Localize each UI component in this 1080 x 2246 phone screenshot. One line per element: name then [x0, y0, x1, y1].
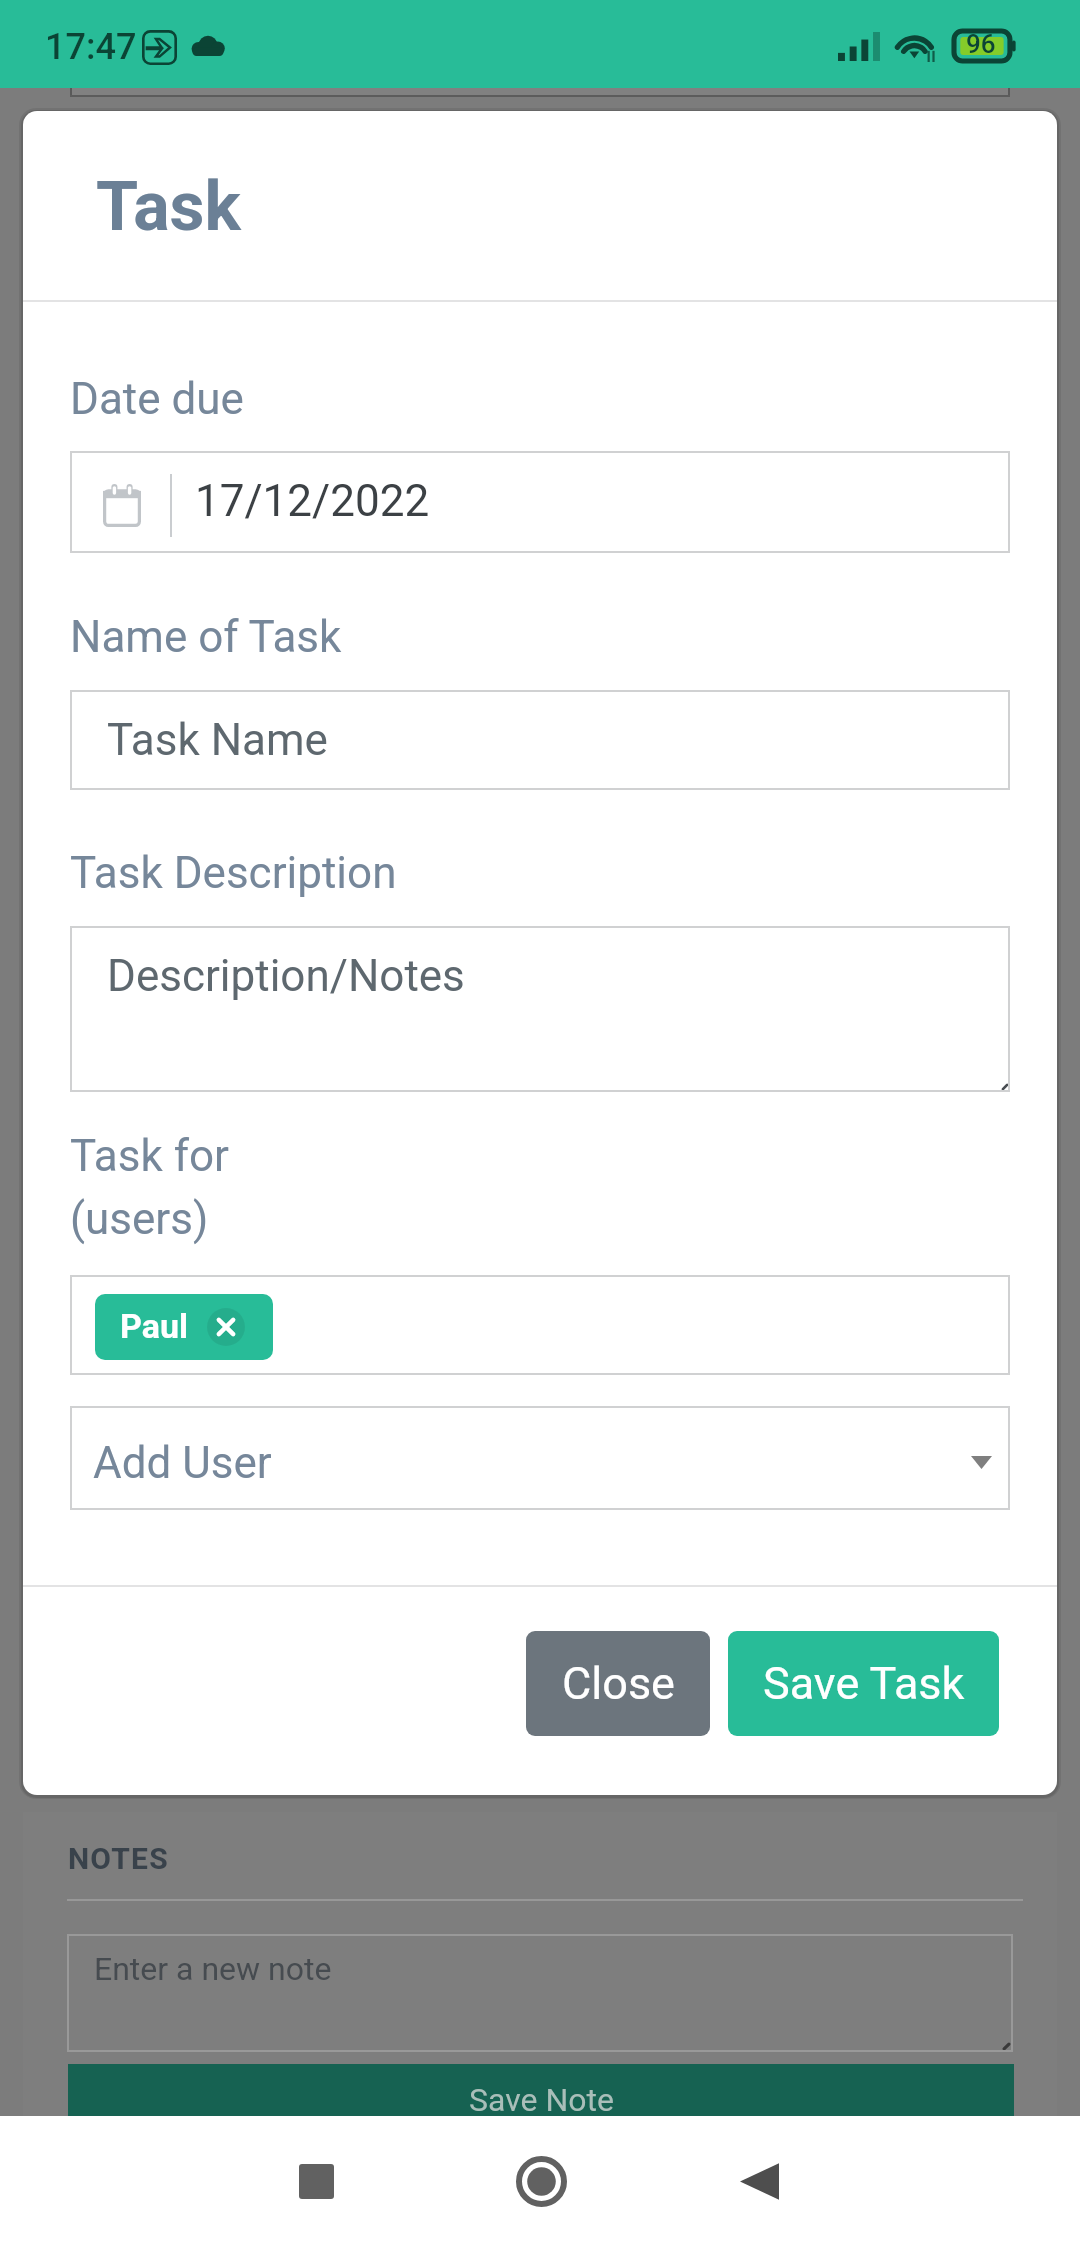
staticText: Save Task	[763, 1657, 965, 1710]
staticText: Save Note	[469, 2081, 614, 2119]
staticText: 17/12/2022	[195, 475, 430, 527]
button[interactable]: Back	[689, 2116, 829, 2246]
staticText: 17:47	[45, 26, 137, 68]
other: Remove Paul	[207, 1308, 245, 1346]
staticText: Task for	[70, 1130, 229, 1182]
staticText: Task	[96, 167, 241, 247]
staticText: (users)	[70, 1193, 209, 1245]
button[interactable]: Pick date	[70, 451, 1010, 553]
button[interactable]: Close	[526, 1631, 710, 1736]
staticText: NOTES	[68, 1841, 169, 1876]
button[interactable]: Task Name	[70, 690, 1010, 790]
staticText: Task Description	[70, 847, 397, 899]
button[interactable]: Add User	[70, 1406, 1010, 1510]
staticText: Task Name	[107, 714, 328, 766]
staticText: Name of Task	[70, 611, 342, 663]
staticText: 96	[966, 29, 996, 59]
button[interactable]: Home	[471, 2116, 611, 2246]
staticText: Add User	[93, 1437, 272, 1489]
staticText: Enter a new note	[94, 1950, 332, 1988]
staticText: Close	[562, 1657, 675, 1710]
staticText: Description/Notes	[107, 950, 465, 1002]
button[interactable]: Save Task	[728, 1631, 999, 1736]
staticText: Paul	[120, 1306, 188, 1346]
button[interactable]: Paul	[95, 1294, 273, 1360]
staticText: Date due	[70, 373, 244, 425]
button[interactable]: Recent apps	[246, 2116, 386, 2246]
button[interactable]: Description/Notes	[70, 926, 1010, 1092]
